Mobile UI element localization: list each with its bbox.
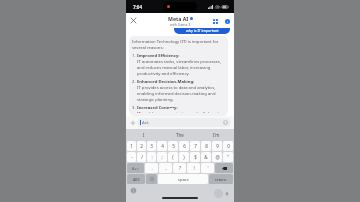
button[interactable]: Emoji (146, 174, 157, 184)
button[interactable]: 0 (223, 141, 233, 151)
staticText: return (215, 177, 227, 182)
staticText: IT automates tasks, streamlines processe… (137, 59, 225, 77)
staticText: & (204, 154, 208, 160)
staticText: I (143, 132, 145, 138)
button[interactable]: ? (173, 163, 186, 173)
staticText: : (151, 154, 153, 160)
button[interactable]: return (209, 174, 233, 184)
staticText: 3 (150, 143, 153, 149)
staticText: / (141, 154, 143, 160)
button[interactable]: why is IT important (174, 28, 230, 34)
staticText: ( (172, 154, 174, 160)
staticText: IT enables communication and collaborati… (137, 111, 225, 113)
staticText: The (176, 132, 184, 138)
button[interactable]: / (137, 152, 146, 162)
button[interactable]: 8 (201, 141, 211, 151)
staticText: $ (194, 154, 197, 160)
other: Send (223, 120, 228, 125)
button[interactable]: Dictation (223, 190, 231, 198)
staticText: Ask (142, 120, 149, 125)
button[interactable]: I'm (198, 129, 234, 140)
button[interactable]: 2 (137, 141, 146, 151)
button[interactable]: 7 (190, 141, 200, 151)
button[interactable]: space (158, 174, 208, 184)
staticText: 4 (161, 143, 164, 149)
staticText: @ (215, 154, 220, 160)
button[interactable]: & (201, 152, 211, 162)
staticText: Enhanced Decision-Making: (137, 79, 195, 85)
staticText: 1 (130, 143, 133, 149)
staticText: ' (207, 165, 209, 171)
button[interactable]: I (126, 129, 162, 140)
staticText: 1. (132, 53, 137, 59)
button[interactable]: 9 (212, 141, 222, 151)
staticText: Increased Conn•••y: (137, 105, 178, 111)
button[interactable]: 3 (147, 141, 156, 151)
button[interactable]: - (127, 152, 136, 162)
button[interactable]: Backspace (215, 163, 233, 173)
button[interactable]: Add (129, 119, 136, 126)
button[interactable]: Switch keyboard language (130, 187, 137, 194)
button[interactable]: ( (168, 152, 178, 162)
button[interactable]: " (223, 152, 233, 162)
staticText: Improved Efficiency: (137, 53, 180, 59)
staticText: Information Technology (IT) is important… (132, 39, 225, 51)
button[interactable]: Close (129, 16, 138, 25)
staticText: , (165, 165, 167, 171)
staticText: IT provides access to data and analytics… (137, 85, 225, 103)
staticText: with Llama 3 (170, 22, 191, 27)
button[interactable]: ! (187, 163, 200, 173)
button[interactable]: ) (179, 152, 189, 162)
staticText: 6 (183, 143, 186, 149)
staticText: 2. (132, 79, 137, 85)
staticText: - (131, 154, 133, 160)
button[interactable]: 5 (168, 141, 178, 151)
staticText: ) (183, 154, 185, 160)
staticText: #+= (132, 166, 139, 171)
button[interactable]: : (147, 152, 156, 162)
staticText: I'm (213, 132, 220, 138)
button[interactable]: #+= (127, 163, 144, 173)
button[interactable]: Info (223, 17, 231, 25)
staticText: Meta AI (168, 15, 189, 22)
staticText: 3. (132, 105, 137, 111)
button[interactable]: . (145, 163, 158, 173)
button[interactable]: Trackpad (214, 189, 223, 198)
staticText: ; (161, 154, 163, 160)
staticText: 5 (172, 143, 175, 149)
button[interactable]: Ask (137, 118, 231, 127)
staticText: ? (179, 165, 181, 171)
staticText: ! (193, 165, 195, 171)
button[interactable]: , (159, 163, 172, 173)
button[interactable]: 1 (127, 141, 136, 151)
button[interactable]: Discover (211, 17, 219, 25)
staticText: " (227, 154, 229, 160)
button[interactable]: Information Technology (IT) is important… (132, 39, 225, 113)
button[interactable]: 6 (179, 141, 189, 151)
staticText: 7 (194, 143, 197, 149)
button[interactable]: ' (201, 163, 214, 173)
staticText: . (151, 165, 153, 171)
staticText: 2 (140, 143, 143, 149)
button[interactable]: $ (190, 152, 200, 162)
button[interactable]: ; (157, 152, 167, 162)
button[interactable]: @ (212, 152, 222, 162)
button[interactable]: ABC (127, 174, 145, 184)
staticText: 9 (216, 143, 219, 149)
staticText: space (178, 177, 189, 182)
staticText: 0 (227, 143, 230, 149)
staticText: ABC (133, 177, 140, 182)
staticText: 8 (205, 143, 208, 149)
staticText: why is IT important (186, 28, 219, 33)
button[interactable]: The (162, 129, 198, 140)
button[interactable]: 4 (157, 141, 167, 151)
staticText: 7:04 (133, 4, 142, 10)
